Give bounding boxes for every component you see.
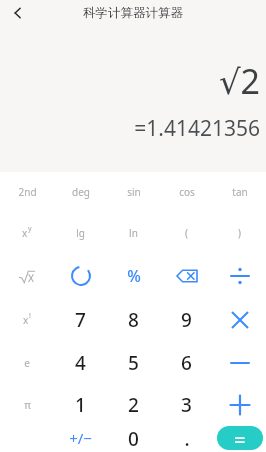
button[interactable]: Minus [213, 342, 266, 384]
staticText: ( [185, 226, 188, 240]
button[interactable]: 9 [160, 298, 213, 342]
button[interactable]: 6 [160, 342, 213, 384]
staticText: cos [179, 185, 195, 199]
staticText: 7 [75, 307, 86, 333]
button[interactable]: 2nd [0, 172, 54, 212]
button[interactable]: 0 [107, 426, 160, 450]
button[interactable]: Square root [0, 254, 54, 298]
button[interactable]: e [0, 342, 54, 384]
staticText: y [28, 224, 32, 234]
staticText: lg [76, 226, 85, 240]
button[interactable]: x [0, 212, 54, 254]
staticText: = [234, 426, 246, 450]
button[interactable]: tan [213, 172, 266, 212]
button[interactable]: lg [54, 212, 107, 254]
button[interactable]: 1 [54, 384, 107, 426]
button[interactable]: Plus [213, 384, 266, 426]
staticText: x [22, 226, 28, 240]
staticText: 4 [75, 350, 86, 376]
button[interactable]: Clear [54, 254, 107, 298]
staticText: 5 [128, 350, 139, 376]
button[interactable]: cos [160, 172, 213, 212]
button[interactable]: 4 [54, 342, 107, 384]
staticText: 9 [181, 307, 192, 333]
button[interactable]: ) [213, 212, 266, 254]
staticText: tan [232, 185, 248, 199]
button[interactable]: Equals [217, 426, 263, 450]
button[interactable]: Divide [213, 254, 266, 298]
staticText: 2 [128, 392, 139, 418]
button[interactable]: 2 [107, 384, 160, 426]
button[interactable]: deg [54, 172, 107, 212]
staticText: π [24, 398, 31, 412]
button[interactable]: 8 [107, 298, 160, 342]
button[interactable]: +/− [54, 426, 107, 450]
staticText: 0 [128, 426, 139, 450]
staticText: 8 [128, 307, 139, 333]
staticText: . [184, 426, 190, 450]
staticText: ! [29, 311, 31, 321]
button[interactable]: ( [160, 212, 213, 254]
staticText: ) [238, 226, 241, 240]
button[interactable]: x [0, 298, 54, 342]
staticText: +/− [69, 428, 92, 448]
button[interactable]: % [107, 254, 160, 298]
button[interactable]: Back [4, 0, 32, 26]
staticText: √2 [218, 58, 260, 104]
button[interactable]: 5 [107, 342, 160, 384]
staticText: x [23, 313, 29, 327]
button[interactable]: π [0, 384, 54, 426]
button[interactable]: sin [107, 172, 160, 212]
staticText: e [24, 356, 30, 370]
button[interactable]: . [160, 426, 213, 450]
staticText: ln [129, 226, 138, 240]
button[interactable]: Backspace [160, 254, 213, 298]
staticText: 3 [181, 392, 192, 418]
staticText: deg [72, 185, 90, 199]
staticText: 2nd [18, 185, 37, 199]
staticText: 1 [75, 392, 86, 418]
staticText: sin [127, 185, 141, 199]
button[interactable]: ln [107, 212, 160, 254]
button[interactable]: Multiply [213, 298, 266, 342]
staticText: =1.41421356 [134, 114, 260, 143]
button[interactable]: 3 [160, 384, 213, 426]
staticText: 科学计算器计算器 [83, 5, 183, 21]
button[interactable]: 7 [54, 298, 107, 342]
staticText: % [127, 265, 141, 287]
staticText: 6 [181, 350, 192, 376]
